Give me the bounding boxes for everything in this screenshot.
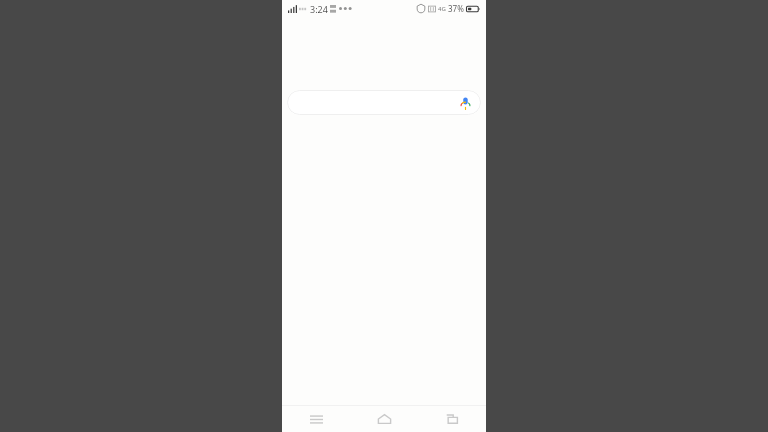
staticText: 4G [438,5,446,13]
button[interactable]: Recents [282,406,350,432]
button[interactable]: Voice search [457,95,473,111]
button[interactable]: Voice search [287,90,481,115]
staticText: 37% [448,3,464,14]
staticText: 3:24 [310,3,328,15]
button[interactable]: Home [350,406,418,432]
button[interactable]: Back [418,406,486,432]
